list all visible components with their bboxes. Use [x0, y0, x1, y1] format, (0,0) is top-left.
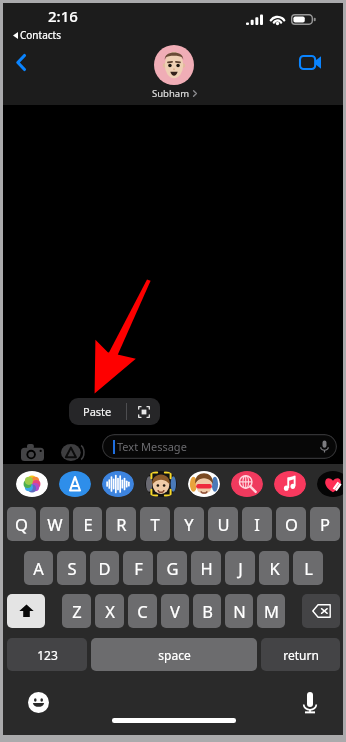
staticText: Q: [15, 513, 28, 535]
staticText: H: [200, 557, 213, 579]
button[interactable]: A: [24, 551, 53, 585]
button[interactable]: Audio: [102, 471, 134, 497]
staticText: 2:16: [48, 6, 78, 26]
button[interactable]: S: [57, 551, 86, 585]
button[interactable]: Back: [6, 47, 36, 77]
button[interactable]: 123: [7, 638, 87, 671]
button[interactable]: Dictation: [297, 689, 323, 715]
staticText: Text Message: [117, 439, 187, 454]
button[interactable]: Digital Touch: [317, 471, 346, 497]
button[interactable]: Photos: [16, 471, 48, 497]
staticText: Subham: [152, 87, 190, 100]
button[interactable]: V: [161, 594, 189, 628]
button[interactable]: M: [257, 594, 285, 628]
staticText: A: [33, 557, 44, 579]
button[interactable]: D: [90, 551, 119, 585]
staticText: W: [47, 513, 63, 535]
staticText: Y: [184, 513, 194, 535]
button[interactable]: X: [95, 594, 124, 628]
staticText: 123: [37, 647, 58, 663]
button[interactable]: Apps: [57, 437, 87, 467]
staticText: C: [137, 600, 148, 622]
button[interactable]: return: [261, 638, 340, 671]
staticText: L: [304, 557, 313, 579]
button[interactable]: FaceTime video call: [294, 46, 326, 78]
button[interactable]: space: [91, 638, 257, 671]
button[interactable]: W: [40, 507, 69, 541]
button[interactable]: Memoji 2: [188, 471, 220, 497]
staticText: U: [217, 513, 230, 535]
button[interactable]: Shift: [7, 594, 45, 628]
staticText: B: [202, 600, 213, 622]
staticText: S: [67, 557, 77, 579]
staticText: space: [158, 647, 191, 663]
staticText: R: [116, 513, 127, 535]
button[interactable]: U: [208, 507, 238, 541]
button[interactable]: I: [242, 507, 272, 541]
staticText: V: [170, 600, 180, 622]
button[interactable]: T: [140, 507, 170, 541]
staticText: T: [150, 513, 160, 535]
button[interactable]: Image search: [231, 471, 263, 497]
button[interactable]: Z: [62, 594, 91, 628]
staticText: F: [134, 557, 143, 579]
button[interactable]: L: [293, 551, 323, 585]
button[interactable]: Music: [274, 471, 306, 497]
button[interactable]: Scan text: [127, 398, 160, 425]
staticText: P: [320, 513, 330, 535]
staticText: Paste: [83, 404, 112, 419]
button[interactable]: H: [191, 551, 221, 585]
staticText: I: [254, 513, 260, 535]
button[interactable]: Y: [174, 507, 204, 541]
button[interactable]: G: [157, 551, 187, 585]
staticText: K: [269, 557, 280, 579]
staticText: Z: [72, 600, 82, 622]
button[interactable]: C: [128, 594, 157, 628]
staticText: D: [98, 557, 111, 579]
button[interactable]: Camera: [17, 437, 47, 467]
button[interactable]: B: [193, 594, 221, 628]
button[interactable]: J: [225, 551, 255, 585]
button[interactable]: Paste: [69, 398, 126, 425]
staticText: return: [283, 647, 319, 663]
button[interactable]: Backspace: [302, 594, 340, 628]
button[interactable]: Subham: [134, 45, 214, 100]
staticText: Contacts: [20, 28, 61, 42]
staticText: M: [264, 600, 279, 622]
button[interactable]: P: [310, 507, 340, 541]
staticText: O: [285, 513, 298, 535]
button[interactable]: F: [123, 551, 153, 585]
button[interactable]: E: [73, 507, 102, 541]
button[interactable]: O: [276, 507, 306, 541]
button[interactable]: Text Message: [102, 434, 337, 459]
button[interactable]: R: [106, 507, 136, 541]
button[interactable]: Q: [7, 507, 36, 541]
button[interactable]: Memoji: [145, 471, 177, 497]
staticText: E: [83, 513, 93, 535]
button[interactable]: K: [259, 551, 289, 585]
staticText: J: [238, 557, 243, 579]
button[interactable]: N: [225, 594, 253, 628]
staticText: N: [233, 600, 246, 622]
button[interactable]: Emoji: [26, 690, 50, 714]
staticText: G: [166, 557, 179, 579]
staticText: X: [105, 600, 115, 622]
button[interactable]: App Store: [59, 471, 91, 497]
